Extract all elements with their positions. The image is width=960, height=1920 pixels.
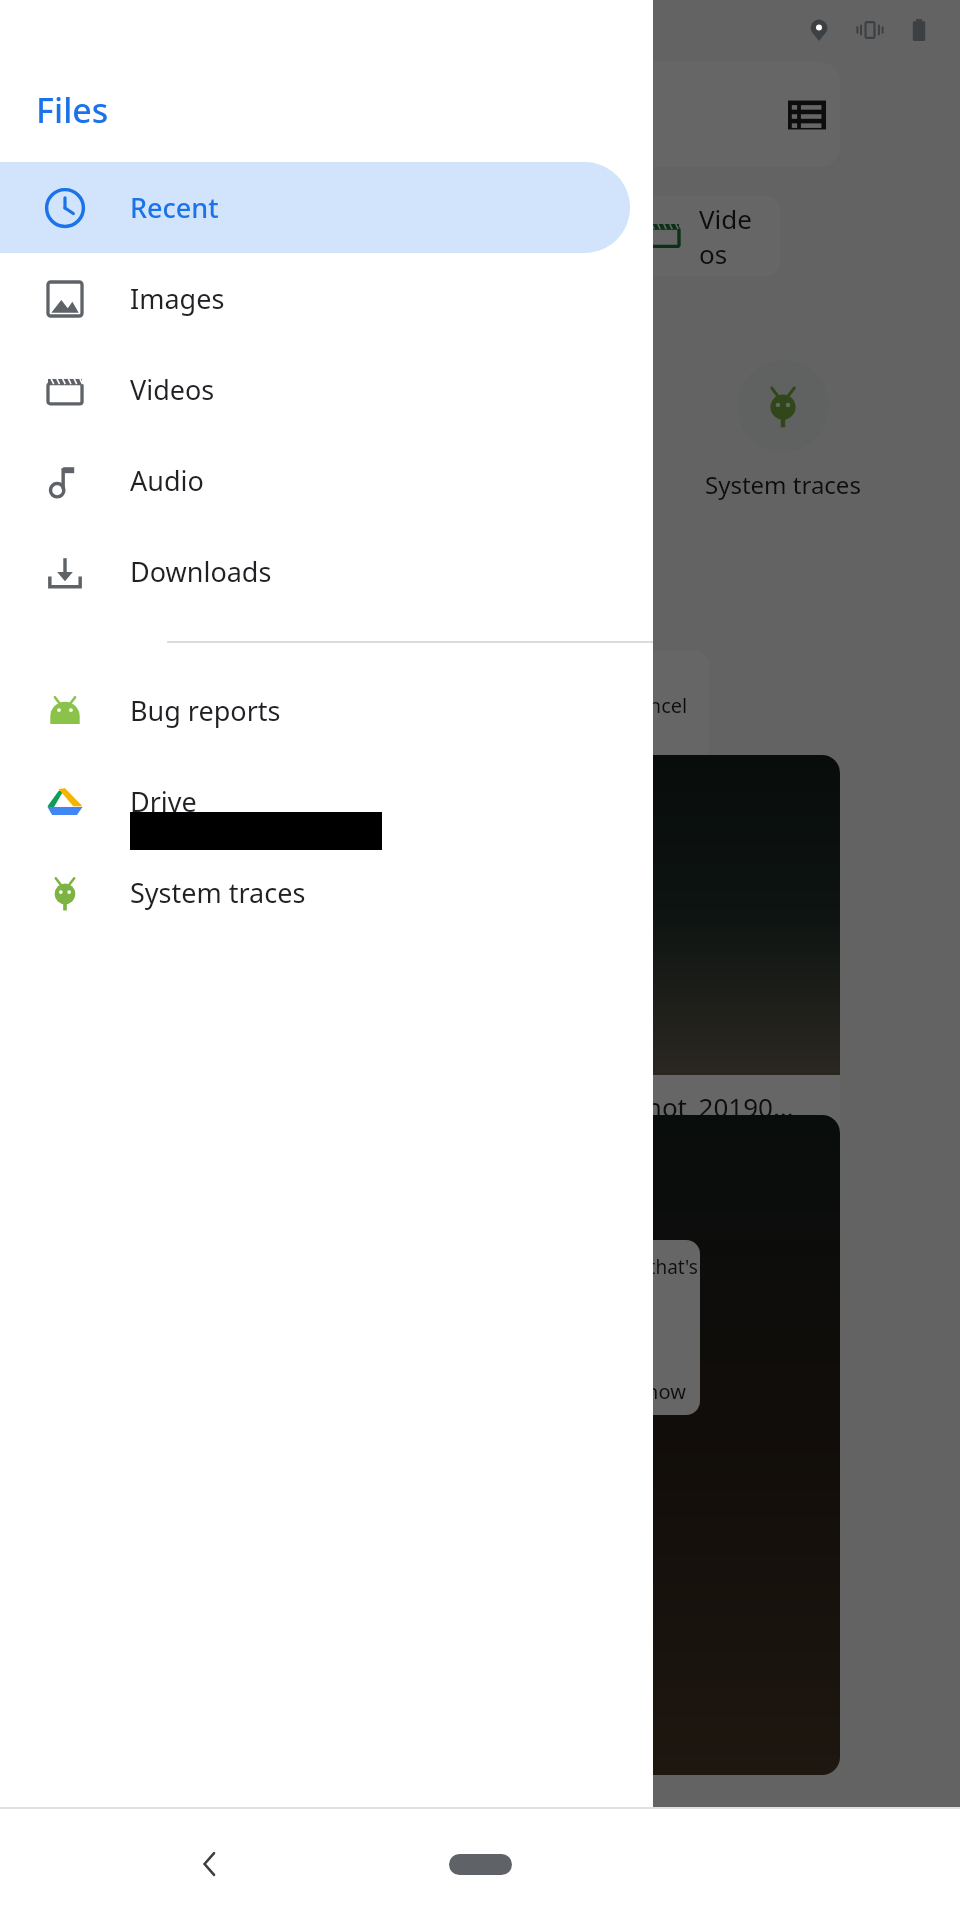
staticText: Screenshot_20190… <box>551 1089 794 1124</box>
staticText: Bug reports <box>130 692 281 729</box>
button[interactable]: Audio <box>473 196 597 276</box>
button[interactable]: Bug reports <box>0 665 653 756</box>
button[interactable]: Videos <box>615 196 780 276</box>
staticText: 5 MB Mar 14 <box>551 1132 688 1162</box>
staticText: Drive <box>130 783 197 820</box>
button[interactable]: System traces <box>0 847 653 938</box>
button[interactable]: System traces <box>683 360 883 501</box>
staticText: Files <box>36 87 109 133</box>
button[interactable]: Recent <box>0 162 653 253</box>
staticText: System traces <box>130 874 306 911</box>
staticText: Downloads <box>130 553 272 590</box>
staticText: start capturing everything that's on you… <box>411 1254 698 1306</box>
staticText: Audio <box>130 462 204 499</box>
button[interactable] <box>533 62 840 167</box>
staticText: Images <box>130 280 225 317</box>
button[interactable]: Start now <box>596 1378 686 1405</box>
button[interactable]: Drive <box>0 756 653 847</box>
button[interactable]: Audio <box>0 435 653 526</box>
button[interactable]: Back <box>175 1829 245 1899</box>
button[interactable]: Downloads <box>0 526 653 617</box>
button[interactable]: Home <box>435 1834 525 1894</box>
staticText: Videos <box>130 371 215 408</box>
button[interactable] <box>533 1115 840 1775</box>
staticText: System traces <box>705 468 861 501</box>
button[interactable]: Screenshot_20190… <box>533 755 840 1180</box>
staticText: Audio <box>499 219 571 254</box>
staticText: Cancel <box>625 692 688 719</box>
button[interactable]: Videos <box>0 344 653 435</box>
button[interactable]: Images <box>0 253 653 344</box>
staticText: Videos <box>699 201 754 271</box>
staticText: Recent <box>130 189 219 226</box>
